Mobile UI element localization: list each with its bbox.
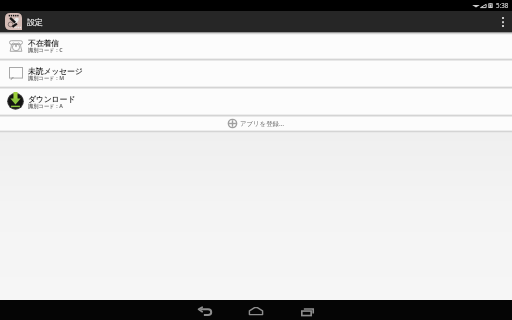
button[interactable]: 未読メッセージ <box>0 61 512 86</box>
button[interactable]: ダウンロード <box>0 89 512 114</box>
staticText: 識別コード：M <box>28 74 65 81</box>
button[interactable]: アプリを登録… <box>0 117 512 130</box>
button[interactable]: Back <box>197 301 213 320</box>
staticText: ダウンロード <box>28 95 76 105</box>
staticText: 不在着信 <box>28 39 59 49</box>
staticText: 設定 <box>27 17 43 27</box>
button[interactable]: Home <box>248 301 264 320</box>
staticText: 5:38 <box>496 1 509 9</box>
staticText: 未読メッセージ <box>28 67 83 77</box>
staticText: 識別コード：A <box>28 102 63 109</box>
button[interactable]: 不在着信 <box>0 35 512 58</box>
staticText: アプリを登録… <box>240 119 284 128</box>
button[interactable]: More options <box>494 11 512 32</box>
staticText: 識別コード：C <box>28 46 63 53</box>
button[interactable]: Recent apps <box>299 301 315 320</box>
